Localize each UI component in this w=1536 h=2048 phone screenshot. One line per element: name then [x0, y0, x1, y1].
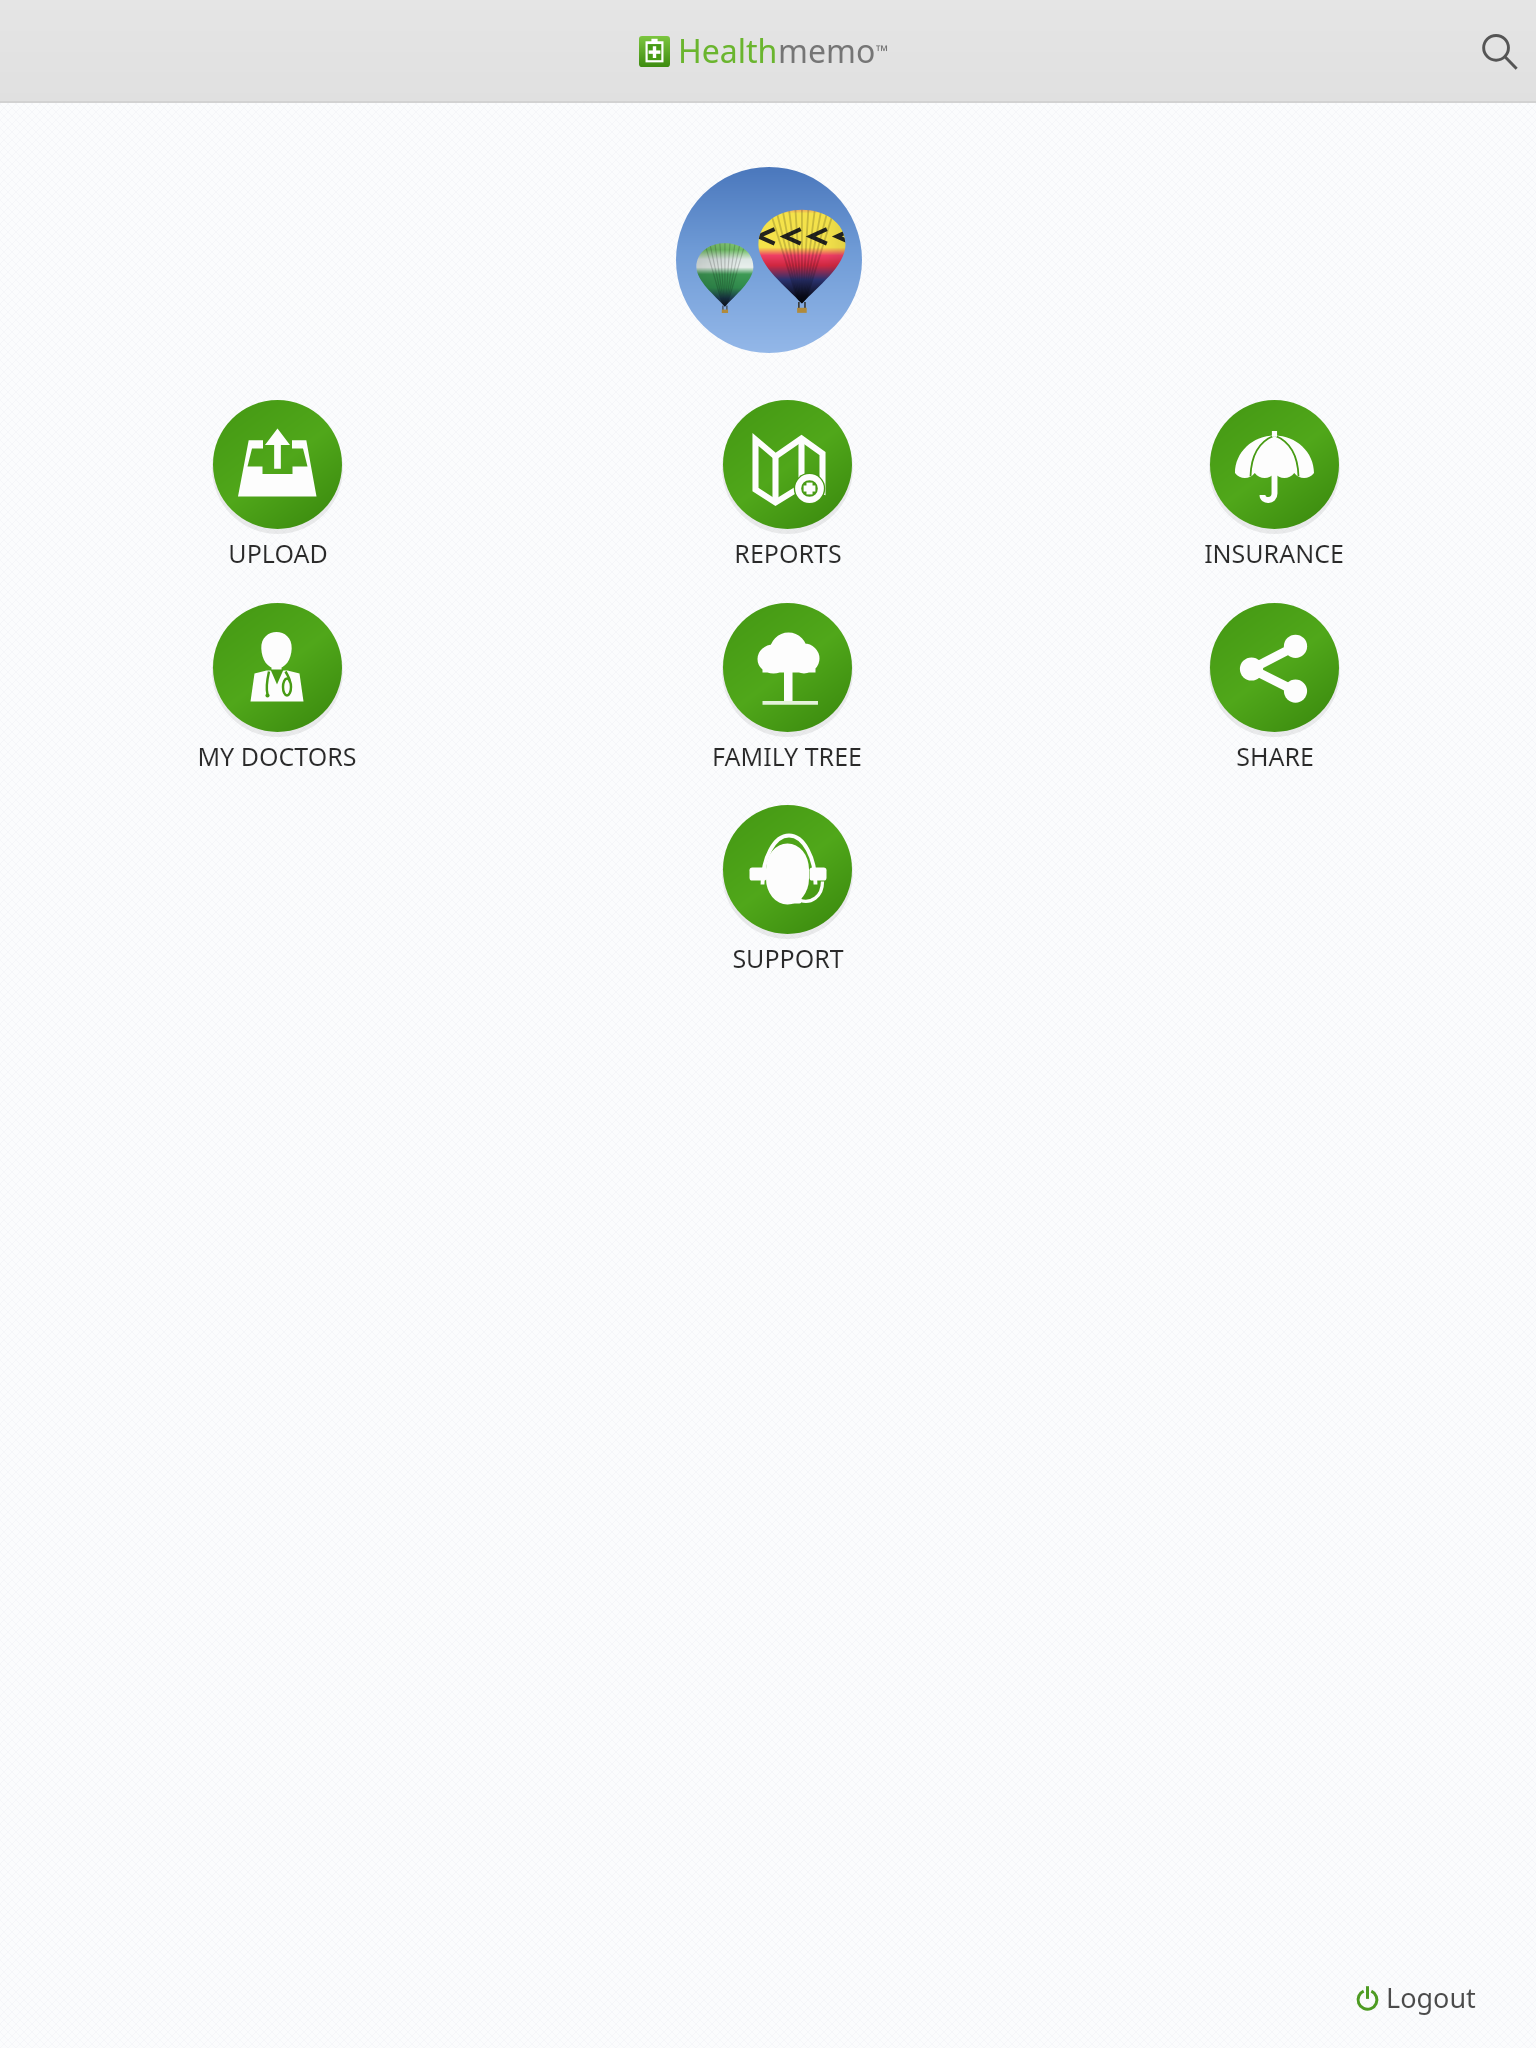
button[interactable]: Profile photo: [676, 167, 862, 353]
button[interactable]: Search: [1467, 20, 1531, 84]
button[interactable]: INSURANCE: [1164, 400, 1384, 570]
button[interactable]: SUPPORT: [677, 805, 897, 975]
staticText: MY DOCTORS: [197, 739, 357, 773]
staticText: memo: [778, 29, 876, 73]
staticText: Logout: [1386, 1979, 1476, 2016]
button[interactable]: Health: [639, 29, 889, 73]
button[interactable]: FAMILY TREE: [677, 603, 897, 773]
button[interactable]: REPORTS: [677, 400, 897, 570]
staticText: SHARE: [1236, 739, 1314, 773]
staticText: Health: [678, 29, 778, 73]
button[interactable]: UPLOAD: [167, 400, 387, 570]
button[interactable]: SHARE: [1164, 603, 1384, 773]
staticText: REPORTS: [734, 536, 842, 570]
staticText: FAMILY TREE: [712, 739, 862, 773]
button[interactable]: Logout: [1353, 1979, 1476, 2016]
staticText: UPLOAD: [228, 536, 328, 570]
staticText: ™: [876, 40, 889, 62]
button[interactable]: MY DOCTORS: [167, 603, 387, 773]
staticText: INSURANCE: [1204, 536, 1344, 570]
staticText: SUPPORT: [732, 941, 844, 975]
